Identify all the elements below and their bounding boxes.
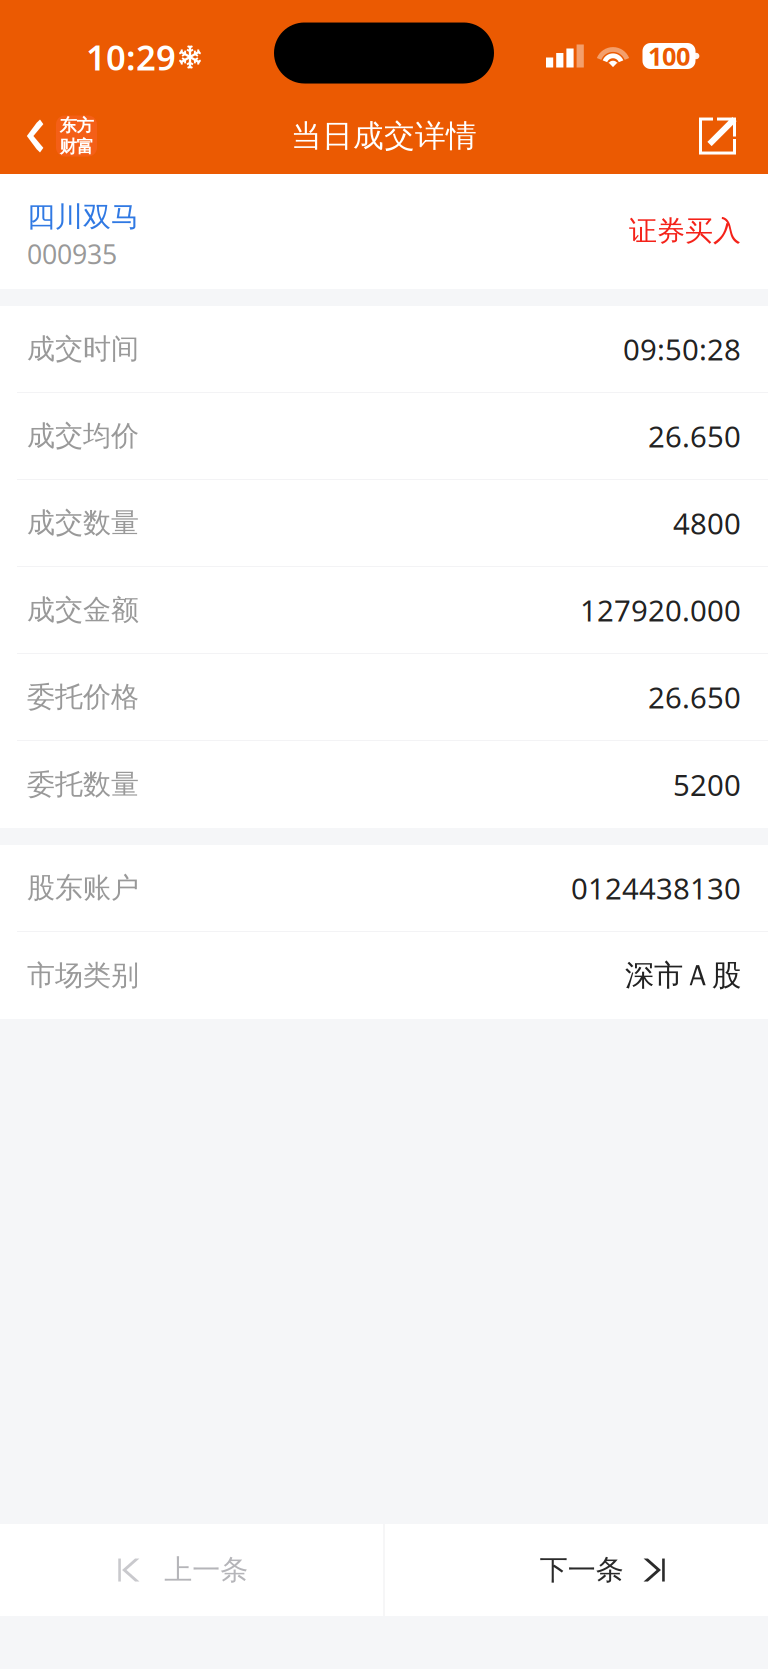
staticText: 09:50:28 [623, 329, 741, 368]
staticText: 委托价格 [27, 680, 139, 714]
staticText: 深市Ａ股 [625, 957, 741, 993]
staticText: 127920.000 [580, 590, 741, 629]
staticText: 成交数量 [27, 506, 139, 540]
staticText: 东方 [59, 115, 93, 136]
staticText: 委托数量 [27, 767, 139, 802]
staticText: 财富 [59, 136, 93, 157]
staticText: 四川双马 [27, 200, 139, 234]
staticText: 4800 [673, 503, 741, 542]
button[interactable]: 返回 [0, 98, 107, 174]
staticText: 000935 [27, 236, 117, 272]
staticText: 10:29 [86, 34, 176, 80]
staticText: 0124438130 [571, 868, 741, 907]
staticText: 下一条 [540, 1553, 624, 1587]
staticText: 成交时间 [27, 332, 139, 366]
staticText: 当日成交详情 [291, 117, 477, 155]
staticText: 上一条 [164, 1553, 248, 1587]
staticText: 市场类别 [27, 958, 139, 993]
staticText: 26.650 [648, 677, 741, 716]
staticText: 成交均价 [27, 419, 139, 453]
staticText: 证券买入 [629, 214, 741, 248]
staticText: 股东账户 [27, 871, 139, 905]
button[interactable]: 上一条 [0, 1524, 383, 1616]
button[interactable]: 分享 [673, 98, 768, 174]
staticText: 5200 [673, 765, 741, 804]
staticText: 100 [648, 39, 690, 73]
staticText: 26.650 [648, 416, 741, 455]
button[interactable]: 下一条 [384, 1524, 768, 1616]
staticText: 成交金额 [27, 593, 139, 627]
